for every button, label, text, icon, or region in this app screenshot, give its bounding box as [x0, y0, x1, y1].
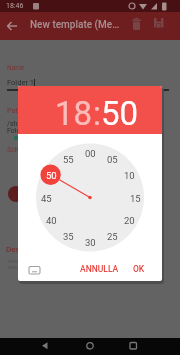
button[interactable]: [24, 259, 45, 277]
button[interactable]: [60, 338, 120, 355]
staticText: 25: [107, 231, 118, 242]
staticText: OK: [133, 264, 145, 274]
staticText: 45: [41, 193, 52, 204]
staticText: Des: [6, 245, 20, 254]
staticText: 55: [63, 154, 74, 165]
staticText: :: [93, 94, 101, 133]
staticText: 00: [85, 148, 96, 159]
staticText: /storage/emulated/0: [7, 120, 73, 128]
staticText: Sched: [7, 146, 27, 154]
button[interactable]: OK: [125, 262, 153, 276]
staticText: Folder 1: [7, 127, 33, 135]
button[interactable]: [0, 12, 24, 40]
staticText: Path: [7, 107, 22, 115]
staticText: 50: [101, 94, 139, 133]
staticText: Folder 1: [7, 78, 34, 87]
staticText: 18:46: [6, 2, 24, 10]
staticText: New template (Me…: [30, 19, 120, 31]
staticText: 15: [130, 193, 141, 204]
button[interactable]: [148, 12, 169, 40]
staticText: 35: [63, 231, 74, 242]
button[interactable]: [126, 12, 147, 40]
staticText: 30: [85, 237, 96, 248]
staticText: 10: [124, 170, 135, 181]
staticText: ANNULLA: [80, 264, 119, 274]
staticText: 18: [55, 94, 93, 133]
staticText: 05: [107, 154, 118, 165]
staticText: 40: [46, 215, 57, 226]
button[interactable]: [0, 338, 60, 355]
button[interactable]: [120, 338, 180, 355]
button[interactable]: ANNULLA: [77, 262, 122, 276]
staticText: 50: [46, 170, 57, 181]
staticText: Name: [7, 64, 25, 72]
staticText: 20: [124, 215, 135, 226]
